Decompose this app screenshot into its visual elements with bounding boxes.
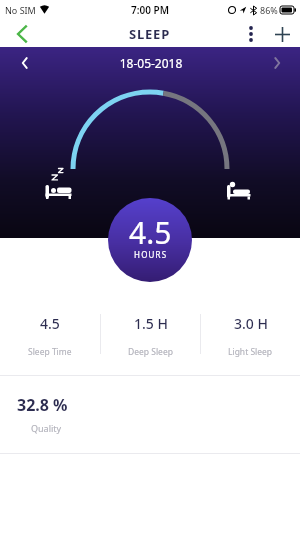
staticText: 7:00 PM — [131, 3, 169, 17]
staticText: 4.5 — [40, 314, 60, 333]
staticText: 18-05-2018 — [32, 55, 270, 71]
staticText: SLEEP — [129, 25, 171, 43]
staticText: Quality — [31, 422, 62, 434]
button[interactable] — [270, 56, 284, 70]
staticText: 1.5 H — [134, 314, 168, 333]
staticText: Light Sleep — [228, 346, 273, 358]
staticText: 3.0 H — [234, 314, 268, 333]
button[interactable] — [241, 24, 261, 44]
staticText: HOURS — [134, 249, 168, 260]
staticText: Deep Sleep — [128, 346, 173, 358]
button[interactable] — [10, 22, 34, 46]
staticText: No SIM — [5, 4, 36, 16]
button[interactable]: 4.5 — [0, 310, 100, 358]
staticText: 86% — [260, 4, 278, 16]
button[interactable]: 3.0 H — [201, 310, 300, 358]
staticText: 32.8 % — [17, 394, 68, 416]
button[interactable]: 4.5 — [108, 198, 192, 282]
staticText: Sleep Time — [28, 346, 72, 358]
staticText: 4.5 — [129, 212, 172, 253]
button[interactable] — [271, 23, 293, 45]
button[interactable] — [18, 56, 32, 70]
button[interactable]: 1.5 H — [101, 310, 200, 358]
